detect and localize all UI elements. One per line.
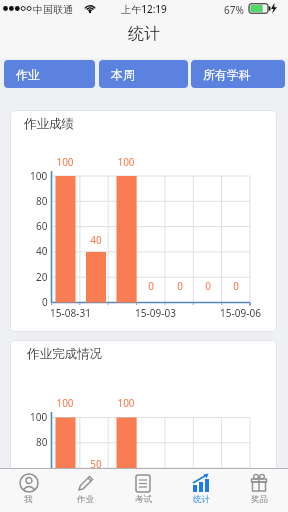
staticText: 40 [90, 233, 102, 247]
staticText: 100 [56, 396, 74, 410]
staticText: 0 [148, 279, 154, 293]
staticText: 67% [224, 3, 244, 17]
button[interactable]: 作业 [4, 60, 95, 88]
staticText: 统计 [128, 24, 160, 44]
staticText: 本周 [111, 67, 135, 82]
staticText: 统计 [193, 494, 210, 505]
staticText: 所有学科 [203, 67, 251, 82]
button[interactable]: 本周 [99, 60, 188, 88]
staticText: 100 [117, 155, 135, 169]
button[interactable]: 我 [0, 469, 57, 512]
staticText: 20 [36, 270, 48, 284]
staticText: 50 [90, 457, 102, 471]
staticText: 中国联通 [33, 3, 73, 16]
staticText: 上午12:19 [121, 2, 167, 16]
staticText: 0 [177, 279, 183, 293]
staticText: 我 [24, 494, 33, 505]
staticText: 作业成绩 [24, 116, 74, 132]
staticText: 作业完成情况 [27, 346, 102, 362]
staticText: 作业 [77, 494, 94, 505]
staticText: 100 [56, 155, 74, 169]
staticText: 作业 [16, 67, 40, 82]
staticText: 0 [42, 295, 48, 309]
button[interactable]: 统计 [172, 469, 230, 512]
staticText: 15-09-03 [135, 306, 176, 320]
staticText: 100 [117, 396, 135, 410]
staticText: 0 [205, 279, 211, 293]
staticText: 0 [233, 279, 239, 293]
staticText: 奖品 [251, 494, 268, 505]
button[interactable]: 作业 [57, 469, 114, 512]
staticText: 60 [36, 219, 48, 233]
staticText: 15-09-06 [220, 306, 261, 320]
staticText: 80 [36, 435, 48, 449]
staticText: 80 [36, 194, 48, 208]
staticText: 100 [30, 169, 48, 183]
button[interactable]: 考试 [114, 469, 172, 512]
button[interactable]: 奖品 [230, 469, 288, 512]
staticText: 40 [36, 244, 48, 258]
staticText: 100 [30, 410, 48, 424]
staticText: 考试 [135, 494, 152, 505]
staticText: 15-08-31 [50, 306, 91, 320]
button[interactable]: 所有学科 [191, 60, 285, 88]
